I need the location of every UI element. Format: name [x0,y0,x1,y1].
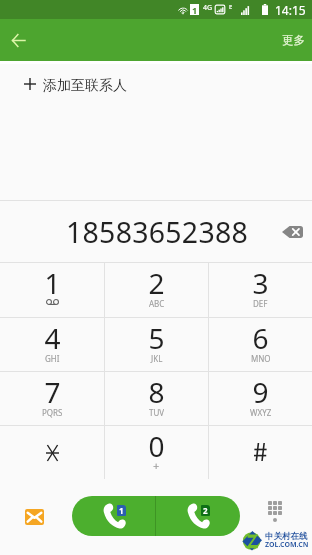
staticText: 18583652388 [66,213,249,252]
staticText: + [153,458,160,473]
staticText: 2 [203,505,208,516]
staticText: 添加至联系人 [43,77,127,95]
staticText: 4G [203,3,213,13]
button[interactable]: Backspace [274,214,310,250]
button[interactable]: 0 [105,425,208,479]
button[interactable] [209,425,312,479]
button[interactable]: 2 [105,262,208,317]
staticText: 9 [252,373,269,411]
staticText: ABC [149,298,165,309]
button[interactable]: 5 [105,317,208,371]
staticText: 5 [148,319,165,357]
button[interactable]: 6 [209,317,312,371]
staticText: 更多 [282,33,305,47]
staticText: E [229,3,233,11]
staticText: MNO [251,353,271,364]
button[interactable]: Keypad [257,494,293,530]
staticText: 1 [44,264,61,302]
button[interactable] [0,425,104,479]
staticText: 1 [192,4,198,15]
button[interactable]: Back [0,22,36,58]
staticText: PQRS [42,407,63,418]
staticText: 2 [148,264,165,302]
button[interactable]: 1 [0,262,104,317]
staticText: 8 [148,373,165,411]
button[interactable]: 添加至联系人 [0,61,312,106]
button[interactable]: 4 [0,317,104,371]
staticText: 7 [44,373,61,411]
staticText: JKL [151,353,163,364]
staticText: 14:15 [275,2,306,18]
staticText: 4 [44,319,61,357]
button[interactable]: Call with SIM 2 [156,496,240,536]
staticText: 中关村在线 [265,531,308,542]
staticText: DEF [253,298,268,309]
staticText: WXYZ [250,407,272,418]
button[interactable]: 9 [209,371,312,425]
staticText: GHI [45,353,60,364]
button[interactable]: 更多 [271,19,312,61]
staticText: 6 [252,319,269,357]
button[interactable]: 7 [0,371,104,425]
button[interactable]: 8 [105,371,208,425]
staticText: 1 [119,505,124,516]
staticText: 0 [148,427,165,465]
button[interactable]: Messages [16,499,52,535]
button[interactable]: Call with SIM 1 [72,496,155,536]
staticText: TUV [149,407,165,418]
staticText: 3 [252,264,269,302]
staticText: ZOL.COM.CN [265,540,309,550]
button[interactable]: 3 [209,262,312,317]
